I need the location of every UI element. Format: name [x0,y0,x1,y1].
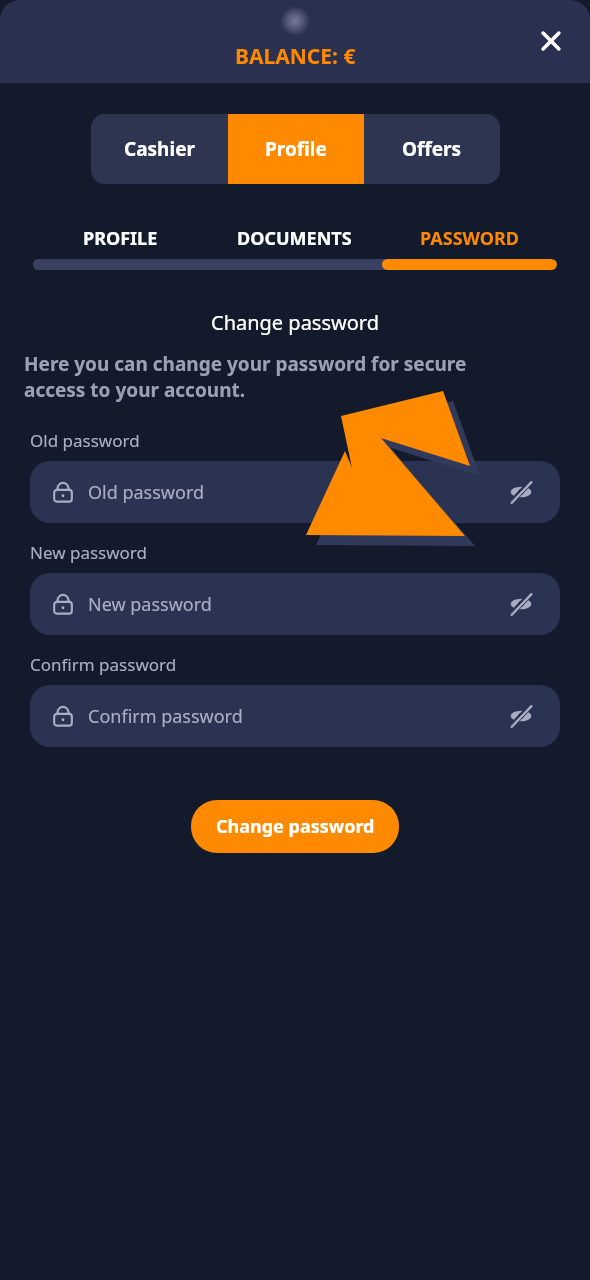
staticText: New password [30,541,148,564]
button[interactable]: PASSWORD [382,217,557,259]
staticText: Offers [402,136,462,162]
staticText: New password [88,592,502,617]
button[interactable]: Change password [191,800,399,853]
staticText: DOCUMENTS [237,226,352,251]
staticText: Old password [30,429,140,452]
button[interactable]: Old password [30,461,560,523]
staticText: PROFILE [83,226,158,251]
button[interactable]: Offers [364,114,500,184]
staticText: Profile [265,136,327,162]
staticText: BALANCE: € [235,42,356,71]
staticText: Change password [20,309,570,336]
button[interactable]: PROFILE [33,217,207,259]
button[interactable]: DOCUMENTS [207,217,382,259]
staticText: Old password [88,480,502,505]
button[interactable]: Show password [502,697,540,735]
button[interactable]: Show password [502,473,540,511]
staticText: Here you can change your password for se… [24,351,530,403]
staticText: Cashier [124,136,195,162]
staticText: Confirm password [88,704,502,729]
button[interactable]: Show password [502,585,540,623]
staticText: Change password [216,814,375,839]
button[interactable]: Confirm password [30,685,560,747]
button[interactable]: Close [527,17,575,65]
button[interactable]: Profile [228,114,364,184]
button[interactable]: New password [30,573,560,635]
staticText: Confirm password [30,653,177,676]
staticText: PASSWORD [420,226,520,251]
button[interactable]: Cashier [91,114,228,184]
